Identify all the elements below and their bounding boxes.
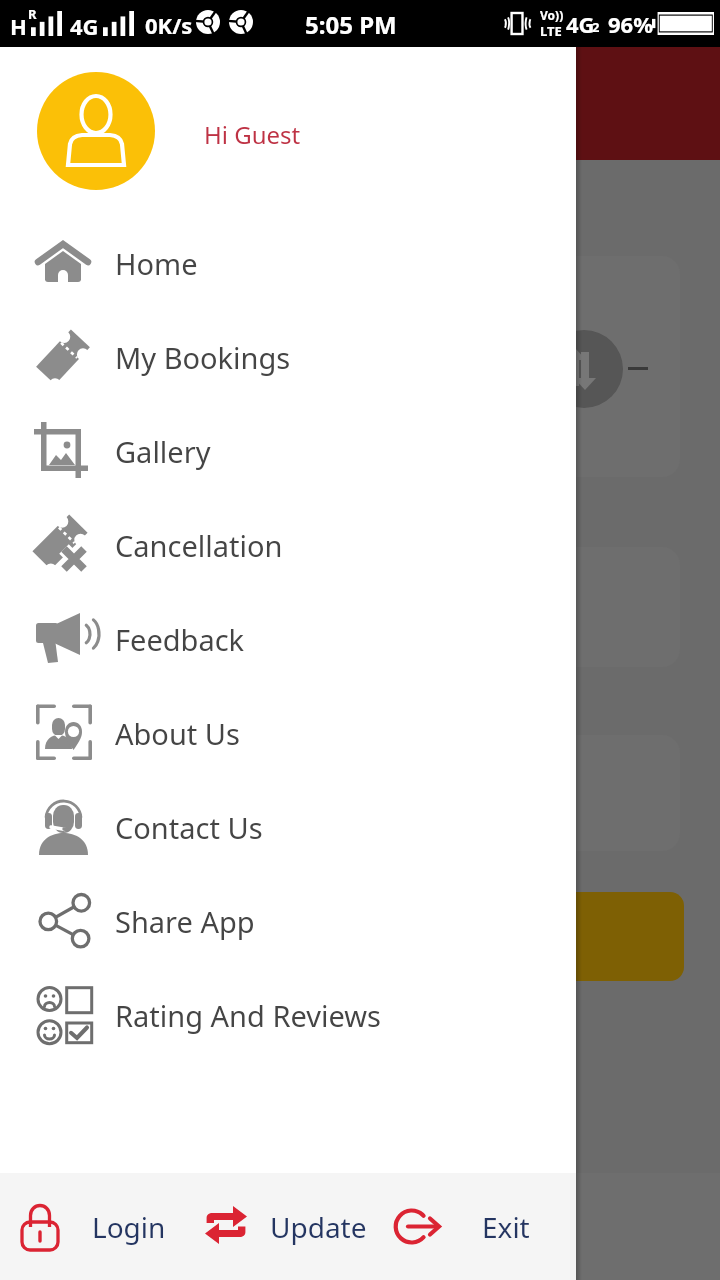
staticText: Share App — [115, 902, 255, 941]
staticText: Hi Guest — [204, 118, 301, 151]
staticText: 0K/s — [145, 10, 193, 40]
staticText: H — [10, 11, 27, 41]
staticText: Gallery — [115, 432, 211, 471]
staticText: Login — [92, 1208, 166, 1246]
staticText: Home — [115, 244, 198, 283]
button[interactable]: Gallery — [0, 404, 576, 498]
staticText: Rating And Reviews — [115, 996, 381, 1035]
button[interactable]: Exit — [390, 1173, 530, 1280]
staticText: Exit — [482, 1208, 530, 1246]
staticText: About Us — [115, 714, 240, 753]
staticText: 96% — [608, 9, 654, 39]
staticText: Vo)) — [540, 7, 564, 23]
staticText: Cancellation — [115, 526, 283, 565]
staticText: My Bookings — [115, 338, 291, 377]
button[interactable]: Profile picture — [0, 47, 576, 216]
staticText: Contact Us — [115, 808, 263, 847]
staticText: Update — [270, 1208, 367, 1246]
button[interactable]: About Us — [0, 686, 576, 780]
staticText: Feedback — [115, 620, 245, 659]
button[interactable]: Profile picture — [37, 72, 155, 190]
staticText: 5:05 PM — [305, 8, 397, 41]
staticText: 4G — [566, 9, 595, 39]
button[interactable]: Login — [14, 1173, 166, 1280]
staticText: R — [28, 5, 37, 23]
button[interactable]: Contact Us — [0, 780, 576, 874]
staticText: LTE — [540, 22, 562, 40]
button[interactable]: Feedback — [0, 592, 576, 686]
button[interactable]: Home — [0, 216, 576, 310]
button[interactable]: Rating And Reviews — [0, 968, 576, 1062]
staticText: 2 — [592, 18, 600, 36]
staticText: 4G — [70, 11, 99, 41]
button[interactable]: My Bookings — [0, 310, 576, 404]
button[interactable]: Share App — [0, 874, 576, 968]
button[interactable]: Cancellation — [0, 498, 576, 592]
button[interactable]: Update — [200, 1173, 367, 1280]
